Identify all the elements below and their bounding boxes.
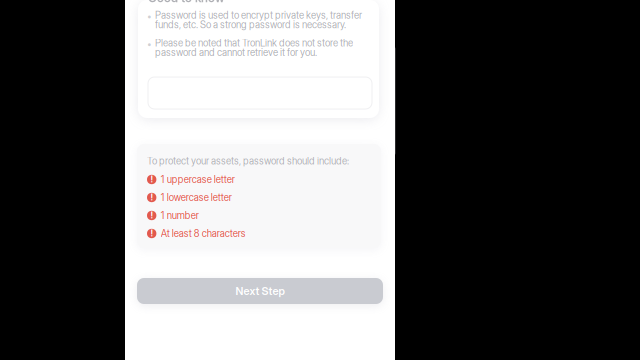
staticText: ! xyxy=(151,228,153,238)
staticText: To protect your assets, password should … xyxy=(147,155,349,167)
staticText: Please be noted that TronLink does not s… xyxy=(155,37,353,49)
staticText: ! xyxy=(151,210,153,220)
staticText: ! xyxy=(151,174,153,184)
staticText: 1 lowercase letter xyxy=(161,192,232,203)
staticText: Good to know xyxy=(148,0,225,5)
staticText: • xyxy=(147,10,152,22)
staticText: password and cannot retrieve it for you. xyxy=(155,46,317,58)
staticText: ! xyxy=(151,192,153,202)
staticText: funds, etc. So a strong password is nece… xyxy=(155,19,346,30)
button[interactable]: Next Step xyxy=(137,278,383,304)
staticText: Next Step xyxy=(235,284,284,298)
staticText: 1 uppercase letter xyxy=(161,174,235,185)
staticText: At least 8 characters xyxy=(161,228,246,239)
staticText: 1 number xyxy=(161,210,199,221)
staticText: • xyxy=(147,38,152,49)
staticText: Password is used to encrypt private keys… xyxy=(155,9,362,21)
